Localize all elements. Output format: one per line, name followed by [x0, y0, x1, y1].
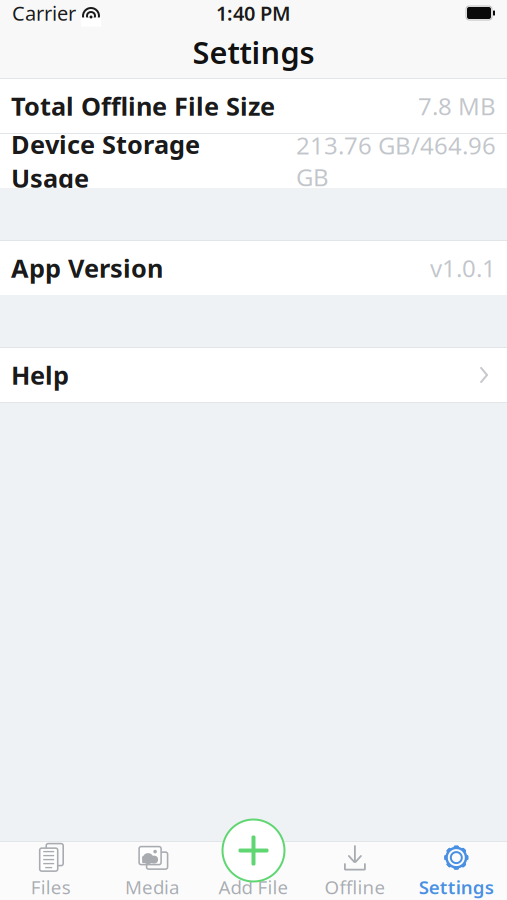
button[interactable]: Media: [101, 842, 203, 900]
staticText: 1:40 PM: [216, 0, 291, 26]
button[interactable]: Offline: [304, 842, 406, 900]
button[interactable]: Total Offline File Size: [0, 79, 507, 133]
button[interactable]: Add File: [203, 842, 304, 900]
staticText: App Version: [11, 251, 163, 285]
staticText: Settings: [419, 875, 494, 899]
button[interactable]: Add File: [222, 819, 284, 881]
staticText: Total Offline File Size: [11, 89, 275, 123]
button[interactable]: Device Storage Usage: [0, 134, 507, 188]
button[interactable]: Settings: [406, 842, 507, 900]
button[interactable]: Files: [0, 842, 101, 900]
staticText: Help: [11, 358, 69, 392]
staticText: Add File: [218, 875, 288, 899]
staticText: 7.8 MB: [418, 90, 496, 122]
staticText: Media: [125, 875, 179, 899]
staticText: v1.0.1: [430, 252, 496, 284]
staticText: Settings: [192, 32, 314, 72]
staticText: Files: [31, 875, 71, 899]
button[interactable]: Help: [0, 348, 507, 402]
staticText: 213.76 GB/464.96 GB: [296, 129, 496, 193]
button[interactable]: App Version: [0, 241, 507, 295]
staticText: Carrier: [12, 0, 76, 26]
staticText: Device Storage Usage: [11, 127, 200, 195]
staticText: Offline: [324, 875, 385, 899]
